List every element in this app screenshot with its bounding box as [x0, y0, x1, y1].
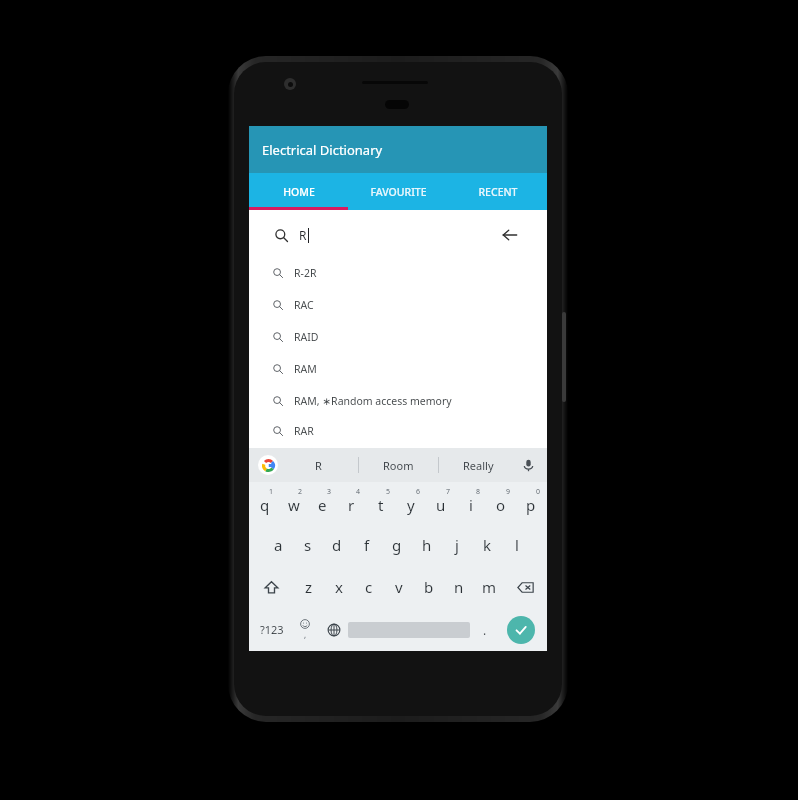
staticText: , — [304, 629, 307, 640]
button[interactable]: . — [470, 608, 499, 651]
button[interactable]: e — [308, 482, 337, 524]
staticText: RAM — [294, 362, 317, 376]
staticText: HOME — [283, 185, 315, 199]
button[interactable]: RECENT — [448, 173, 547, 210]
staticText: a — [274, 535, 283, 555]
button[interactable]: R — [261, 216, 535, 254]
button[interactable]: Back — [499, 224, 521, 246]
button[interactable]: R — [278, 448, 358, 482]
button[interactable]: k — [472, 524, 502, 566]
staticText: m — [482, 577, 497, 597]
staticText: p — [526, 495, 536, 515]
staticText: RAID — [294, 330, 319, 344]
button[interactable]: RAM — [261, 353, 533, 385]
button[interactable]: FAVOURITE — [349, 173, 448, 210]
button[interactable]: RAR — [261, 417, 533, 445]
button[interactable]: g — [382, 524, 412, 566]
button[interactable]: c — [354, 566, 384, 608]
staticText: x — [335, 577, 343, 597]
button[interactable]: Google — [258, 455, 278, 475]
button[interactable]: y — [396, 482, 426, 524]
button[interactable]: s — [293, 524, 322, 566]
staticText: o — [496, 495, 506, 515]
staticText: j — [455, 535, 459, 555]
staticText: FAVOURITE — [370, 185, 427, 199]
staticText: y — [407, 495, 415, 515]
button[interactable]: Emoji — [290, 608, 319, 651]
staticText: h — [422, 535, 432, 555]
button[interactable]: z — [293, 566, 324, 608]
button[interactable]: b — [414, 566, 444, 608]
button[interactable]: R-2R — [261, 257, 533, 289]
staticText: g — [392, 535, 402, 555]
staticText: R-2R — [294, 266, 317, 280]
staticText: 0 — [536, 487, 541, 497]
button[interactable]: o — [486, 482, 516, 524]
button[interactable]: Room — [359, 448, 438, 482]
button[interactable]: Shift — [250, 566, 293, 608]
staticText: v — [395, 577, 403, 597]
staticText: z — [305, 577, 313, 597]
button[interactable]: i — [456, 482, 486, 524]
staticText: RAR — [294, 424, 314, 438]
button[interactable]: r — [337, 482, 366, 524]
button[interactable]: RAM, ∗Random access memory — [261, 385, 533, 417]
staticText: t — [378, 495, 384, 515]
staticText: 1 — [269, 487, 274, 497]
button[interactable]: Backspace — [504, 566, 546, 608]
button[interactable]: a — [264, 524, 293, 566]
button[interactable]: l — [502, 524, 532, 566]
button[interactable]: v — [384, 566, 414, 608]
button[interactable]: Enter — [507, 616, 535, 644]
staticText: 8 — [476, 487, 481, 497]
staticText: d — [332, 535, 342, 555]
button[interactable]: Change language — [319, 608, 348, 651]
button[interactable]: RAC — [261, 289, 533, 321]
button[interactable]: n — [444, 566, 474, 608]
staticText: 2 — [298, 487, 303, 497]
staticText: s — [304, 535, 312, 555]
button[interactable]: w — [279, 482, 308, 524]
staticText: b — [424, 577, 434, 597]
staticText: Really — [463, 458, 494, 473]
button[interactable]: d — [322, 524, 352, 566]
staticText: 7 — [446, 487, 451, 497]
button[interactable]: t — [366, 482, 396, 524]
staticText: 3 — [327, 487, 332, 497]
button[interactable]: ?123 — [253, 608, 290, 651]
staticText: c — [365, 577, 373, 597]
staticText: q — [260, 495, 270, 515]
button[interactable]: RAID — [261, 321, 533, 353]
staticText: 5 — [386, 487, 391, 497]
staticText: RECENT — [478, 185, 518, 199]
button[interactable]: x — [324, 566, 354, 608]
button[interactable]: j — [442, 524, 472, 566]
button[interactable]: HOME — [249, 173, 349, 210]
staticText: f — [364, 535, 370, 555]
button[interactable]: Really — [439, 448, 518, 482]
staticText: w — [288, 495, 300, 515]
button[interactable]: h — [412, 524, 442, 566]
button[interactable]: u — [426, 482, 456, 524]
button[interactable]: Voice input — [518, 455, 538, 475]
button[interactable]: p — [516, 482, 546, 524]
staticText: r — [348, 495, 355, 515]
staticText: u — [436, 495, 446, 515]
staticText: e — [318, 495, 327, 515]
staticText: l — [515, 535, 519, 555]
staticText: ?123 — [260, 622, 284, 637]
button[interactable]: Space — [348, 617, 470, 642]
staticText: Room — [383, 458, 414, 473]
staticText: RAM, ∗Random access memory — [294, 394, 452, 408]
staticText: n — [454, 577, 464, 597]
staticText: 6 — [416, 487, 421, 497]
button[interactable]: f — [352, 524, 382, 566]
staticText: 9 — [506, 487, 511, 497]
staticText: Electrical Dictionary — [262, 141, 383, 159]
button[interactable]: Electrical Dictionary — [249, 126, 547, 173]
staticText: R — [299, 227, 307, 243]
staticText: 4 — [356, 487, 361, 497]
button[interactable]: m — [474, 566, 504, 608]
button[interactable]: q — [250, 482, 279, 524]
staticText: i — [469, 495, 473, 515]
